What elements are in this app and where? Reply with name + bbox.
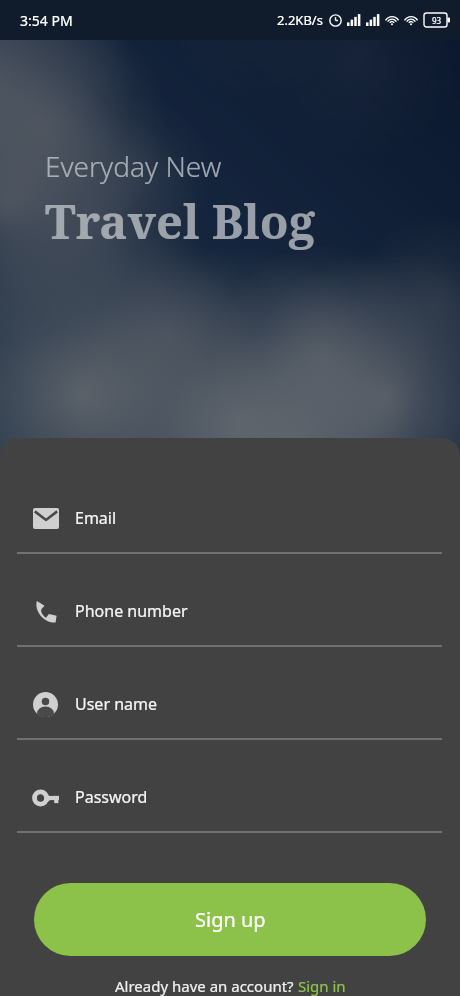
button[interactable]: Phone number xyxy=(0,577,460,670)
staticText: Sign up xyxy=(195,906,266,933)
staticText: Phone number xyxy=(75,600,188,622)
staticText: Sign in xyxy=(298,976,346,996)
button[interactable]: User name xyxy=(0,670,460,763)
other: User name xyxy=(33,692,58,717)
staticText: Everyday New xyxy=(45,147,222,185)
staticText: Travel Blog xyxy=(45,189,315,253)
button[interactable]: Sign in xyxy=(298,976,346,996)
staticText: 2.2KB/s xyxy=(277,11,323,29)
staticText: User name xyxy=(75,693,158,715)
staticText: 3:54 PM xyxy=(20,11,73,30)
staticText: Already have an account? xyxy=(115,976,298,996)
other: Password xyxy=(33,790,59,806)
other: Phone number xyxy=(34,600,58,624)
other: Email xyxy=(33,508,59,529)
staticText: 93 xyxy=(432,15,442,26)
staticText: Password xyxy=(75,786,148,808)
button[interactable]: Password xyxy=(0,763,460,856)
button[interactable]: Email xyxy=(0,484,460,577)
button[interactable]: Sign up xyxy=(34,883,426,956)
staticText: Email xyxy=(75,507,117,529)
